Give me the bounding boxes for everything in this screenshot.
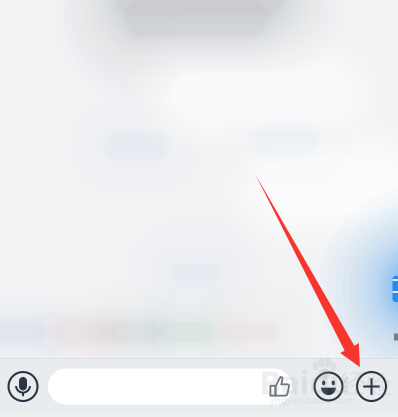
staticText: Baidu — [259, 361, 350, 403]
staticText: 经验 — [339, 368, 393, 400]
button[interactable]: More options — [352, 360, 390, 413]
button[interactable]: Emoji — [309, 360, 347, 413]
staticText: jingyan.baidu.com — [271, 394, 353, 406]
button[interactable]: Send a thumbs up — [263, 360, 297, 413]
button[interactable]: Voice message — [1, 360, 45, 413]
